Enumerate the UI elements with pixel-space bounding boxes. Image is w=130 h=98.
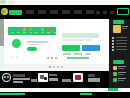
button[interactable] [82, 45, 100, 51]
button[interactable] [27, 47, 37, 51]
button[interactable] [62, 45, 80, 51]
other: Logo [1, 8, 8, 15]
button[interactable] [117, 8, 129, 15]
